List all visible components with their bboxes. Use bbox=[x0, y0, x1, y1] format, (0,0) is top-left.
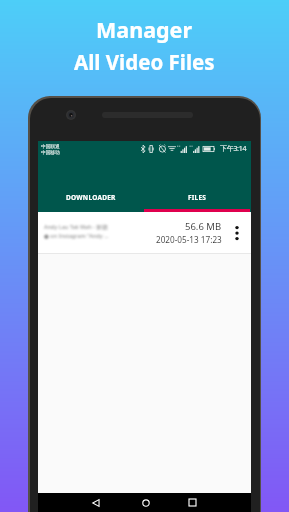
staticText: 56.6 MB bbox=[185, 220, 222, 233]
staticText: Andy Lau Tak Wah - 劉德 bbox=[44, 223, 108, 231]
button[interactable]: More options bbox=[226, 212, 247, 253]
button[interactable]: DOWNLOADER bbox=[38, 186, 144, 208]
button[interactable]: Andy Lau Tak Wah - 劉德 bbox=[38, 212, 251, 253]
staticText: Manager bbox=[96, 15, 193, 44]
staticText: 中国移动 bbox=[41, 149, 60, 155]
staticText: DOWNLOADER bbox=[66, 193, 116, 202]
staticText: FILES bbox=[188, 193, 207, 202]
button[interactable]: FILES bbox=[144, 186, 251, 208]
staticText: 下午3:14 bbox=[220, 144, 247, 154]
staticText: 中国联通 bbox=[41, 143, 60, 149]
button[interactable]: Home bbox=[136, 493, 155, 512]
button[interactable]: Recents bbox=[183, 493, 202, 512]
staticText: ● on Instagram "Andy ... bbox=[44, 232, 109, 240]
button[interactable]: Back bbox=[86, 493, 105, 512]
staticText: All Video Files bbox=[74, 48, 215, 76]
staticText: 2020-05-13 17:23 bbox=[156, 234, 222, 245]
